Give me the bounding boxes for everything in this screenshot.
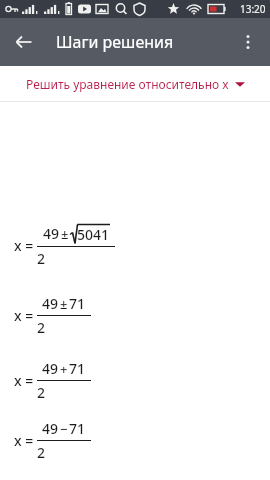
button[interactable]: More options (228, 22, 268, 62)
staticText: 71 (69, 419, 86, 438)
staticText: x = (14, 236, 34, 255)
staticText: 2 (37, 383, 91, 402)
staticText: Шаги решения (56, 31, 174, 53)
staticText: − (60, 420, 68, 438)
staticText: 49 (42, 419, 59, 438)
staticText: 2 (37, 249, 115, 268)
staticText: + (60, 360, 68, 378)
staticText: 49 (42, 359, 59, 378)
staticText: 71 (69, 359, 86, 378)
staticText: 49 (42, 294, 59, 313)
staticText: 71 (69, 294, 86, 313)
staticText: 2 (37, 443, 91, 462)
staticText: ± (61, 225, 69, 243)
staticText: 2 (37, 318, 91, 337)
staticText: 49 (43, 224, 60, 243)
button[interactable]: Решить уравнение относительно x (0, 66, 270, 101)
staticText: Решить уравнение относительно x (26, 76, 229, 92)
staticText: ± (60, 295, 68, 313)
staticText: 13:20 (240, 2, 266, 16)
staticText: 5041 (77, 225, 110, 244)
staticText: x = (14, 306, 34, 325)
staticText: x = (14, 431, 34, 450)
button[interactable]: Back (4, 22, 44, 62)
staticText: x = (14, 371, 34, 390)
